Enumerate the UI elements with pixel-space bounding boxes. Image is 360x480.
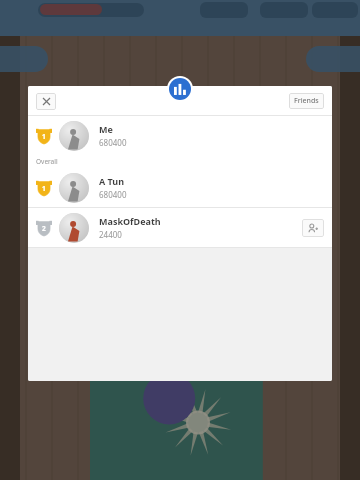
button[interactable]: Close bbox=[36, 93, 56, 110]
staticText: Me bbox=[99, 123, 113, 135]
staticText: 2 bbox=[42, 224, 46, 233]
staticText: 24400 bbox=[99, 229, 122, 240]
staticText: 680400 bbox=[99, 189, 127, 200]
staticText: Friends bbox=[294, 96, 319, 106]
staticText: 680400 bbox=[99, 137, 127, 148]
staticText: MaskOfDeath bbox=[99, 215, 161, 227]
staticText: A Tun bbox=[99, 175, 125, 187]
staticText: Overall bbox=[36, 157, 58, 166]
button[interactable]: Add friend bbox=[302, 219, 324, 237]
staticText: 1 bbox=[42, 184, 46, 193]
staticText: 1 bbox=[42, 132, 46, 141]
button[interactable]: 2 bbox=[28, 208, 332, 247]
button[interactable]: 1 bbox=[28, 116, 332, 155]
button[interactable]: Friends bbox=[289, 93, 324, 109]
button[interactable]: 1 bbox=[28, 168, 332, 207]
button[interactable]: Google Play Games bbox=[169, 78, 191, 100]
